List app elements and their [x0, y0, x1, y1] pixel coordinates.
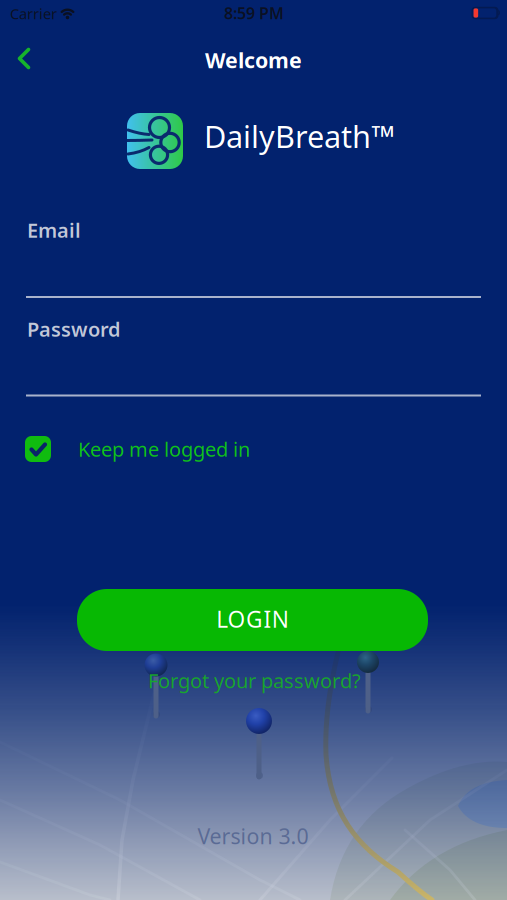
staticText: Welcome: [205, 46, 302, 74]
staticText: DailyBreath™: [204, 116, 395, 156]
staticText: LOGIN: [216, 604, 289, 634]
button[interactable]: Keep me logged in: [0, 427, 507, 471]
button[interactable]: Forgot your password?: [148, 667, 361, 694]
button[interactable]: LOGIN: [77, 589, 428, 651]
staticText: Carrier: [10, 4, 57, 23]
staticText: 8:59 PM: [224, 2, 284, 24]
staticText: Email: [27, 217, 81, 243]
staticText: Password: [27, 316, 121, 342]
button[interactable]: [9, 45, 47, 72]
staticText: Keep me logged in: [78, 436, 250, 462]
staticText: Forgot your password?: [148, 667, 361, 694]
staticText: Version 3.0: [197, 822, 308, 850]
